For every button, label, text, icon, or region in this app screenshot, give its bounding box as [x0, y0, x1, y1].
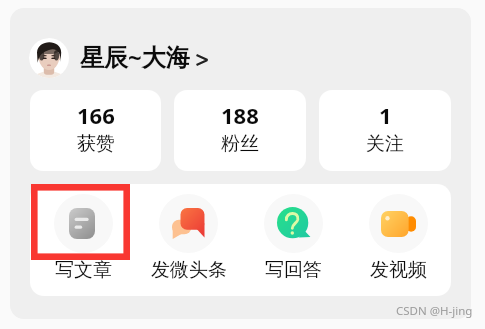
- button[interactable]: 1: [319, 90, 451, 171]
- button[interactable]: 写回答: [241, 184, 346, 293]
- staticText: 粉丝: [221, 132, 259, 156]
- staticText: 166: [77, 100, 115, 130]
- staticText: 写回答: [265, 258, 322, 282]
- button[interactable]: 166: [30, 90, 161, 171]
- staticText: 发视频: [370, 258, 427, 282]
- button[interactable]: 发视频: [346, 184, 451, 293]
- button[interactable]: 写文章: [30, 184, 136, 293]
- button[interactable]: 188: [174, 90, 306, 171]
- staticText: 发微头条: [151, 258, 227, 282]
- button[interactable]: 发微头条: [136, 184, 241, 293]
- staticText: 1: [379, 100, 392, 130]
- button[interactable]: 个人主页 星辰~大海: [29, 38, 208, 78]
- staticText: CSDN @H-jing: [396, 303, 473, 319]
- staticText: 写文章: [55, 258, 112, 282]
- staticText: 获赞: [77, 132, 115, 156]
- staticText: 188: [221, 100, 259, 130]
- staticText: 关注: [366, 132, 404, 156]
- staticText: 星辰~大海: [80, 40, 190, 73]
